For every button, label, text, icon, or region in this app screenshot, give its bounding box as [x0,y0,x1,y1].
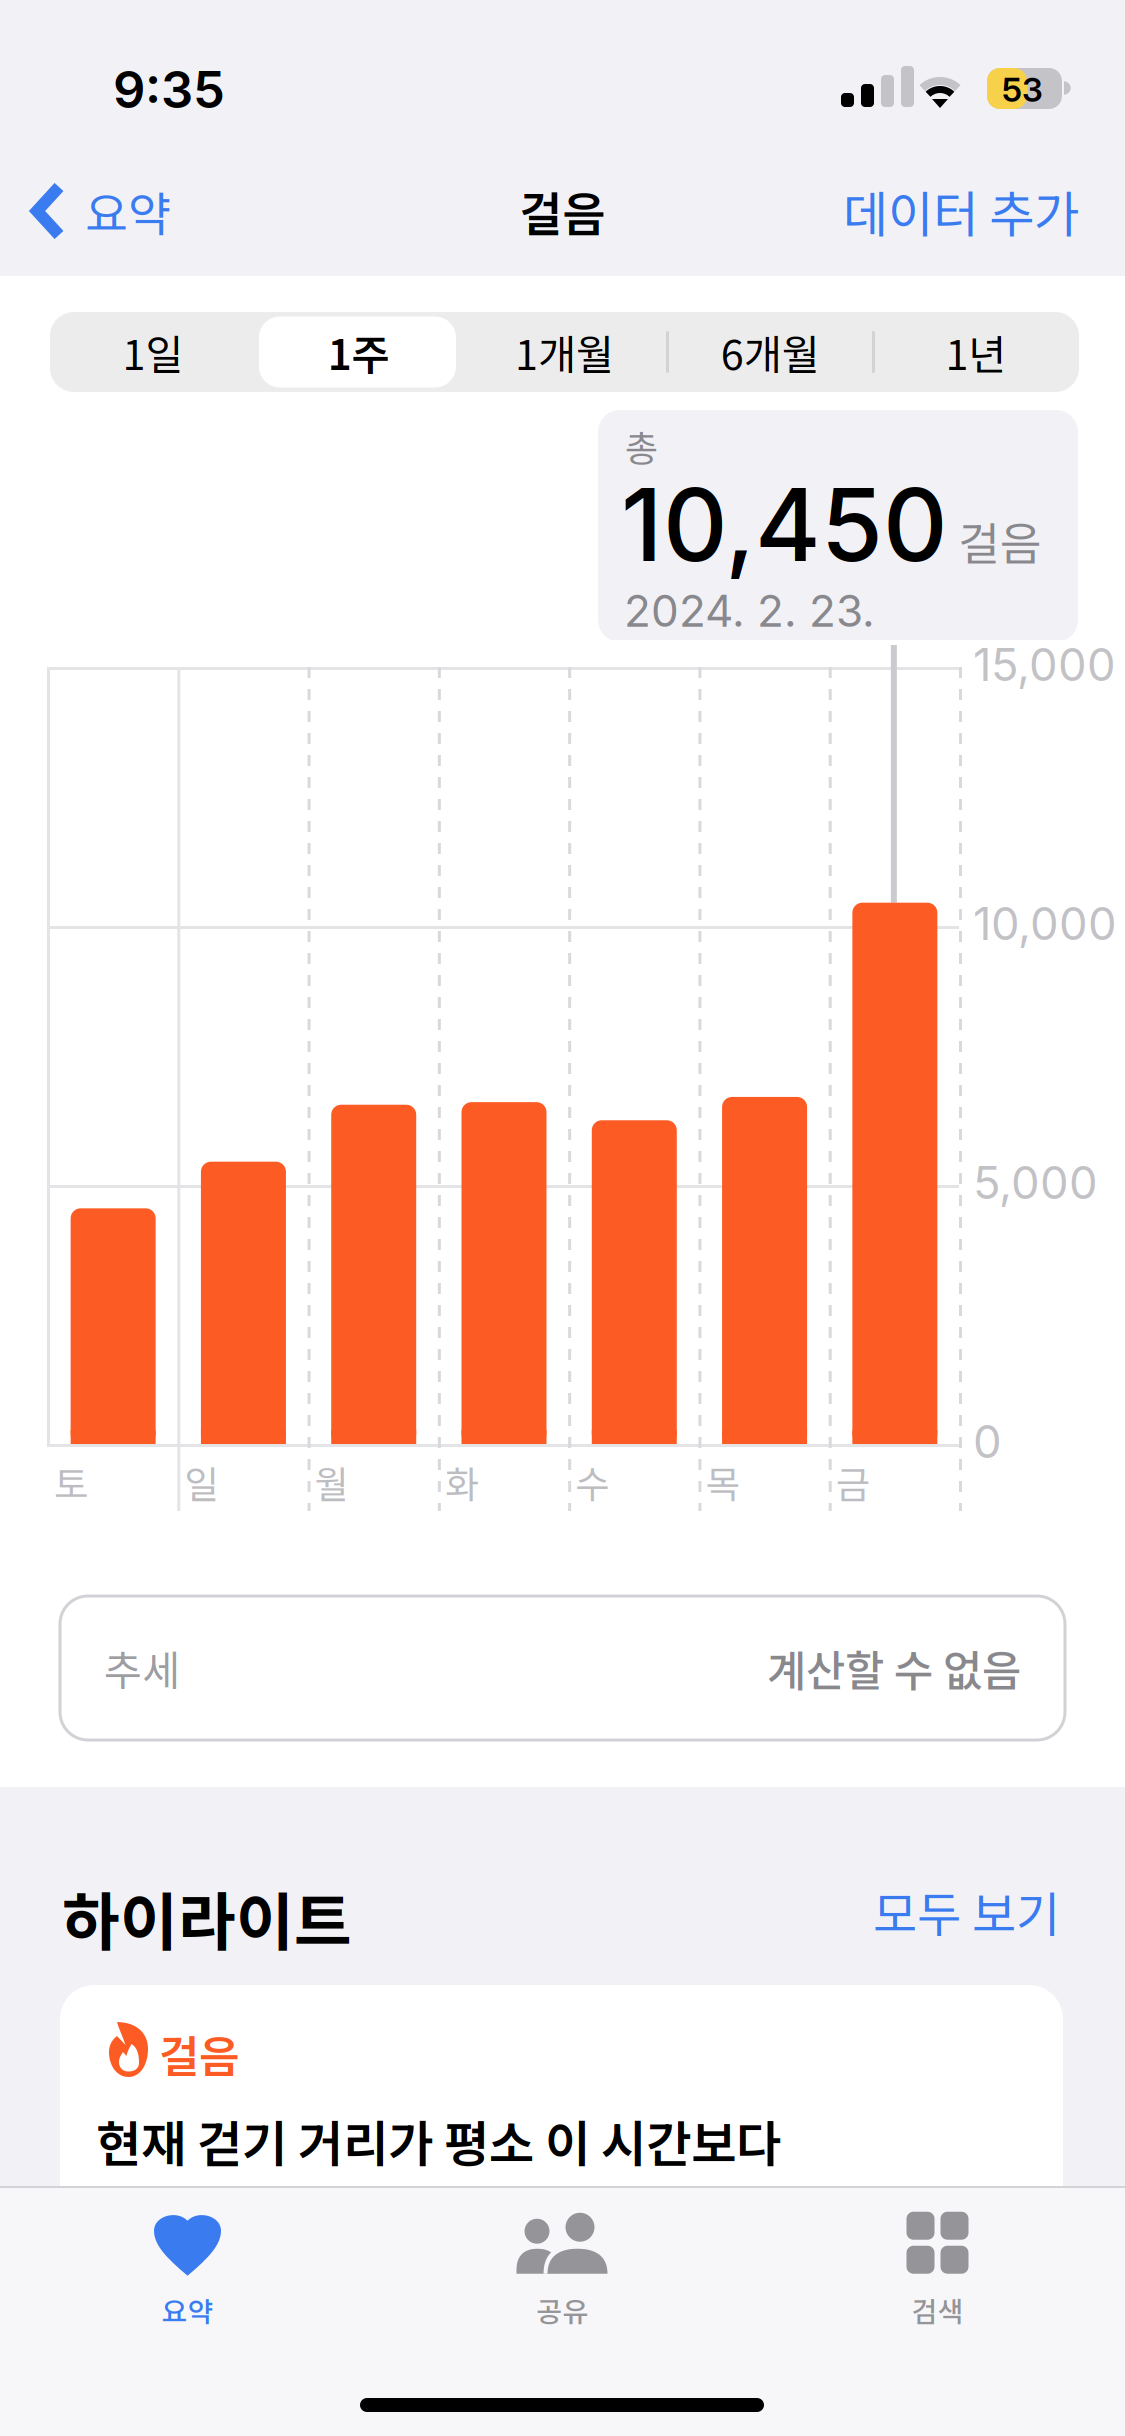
staticText: 하이라이트 [62,1872,352,1963]
staticText: 화 [445,1455,479,1509]
staticText: 데이터 추가 [843,175,1079,247]
staticText: 6개월 [721,322,820,382]
staticText: 계산할 수 없음 [767,1637,1021,1699]
staticText: 걸음 [159,2022,239,2086]
staticText: 걸음 [519,177,605,245]
staticText: 1년 [946,322,1007,382]
staticText: 10,450 [621,464,948,585]
staticText: 금 [836,1455,870,1509]
button[interactable]: 데이터 추가 [0,146,1125,276]
button[interactable]: 1일 [50,312,256,392]
staticText: 검색 [911,2290,963,2330]
button[interactable]: 요약 [0,146,195,276]
button[interactable]: 1개월 [462,312,667,392]
button[interactable]: 1주 [256,312,462,392]
staticText: 목 [705,1455,739,1509]
staticText: 요약 [85,177,171,245]
staticText: 수 [575,1455,609,1509]
staticText: 10,000 [973,896,1117,951]
staticText: 1일 [122,322,183,382]
staticText: 0 [973,1414,1002,1469]
button[interactable]: 1년 [873,312,1079,392]
staticText: 총 [625,420,658,472]
staticText: 1주 [328,322,390,382]
staticText: 9:35 [113,59,225,120]
staticText: 걸음 [958,508,1042,574]
button[interactable]: 추세 [60,1596,1065,1740]
staticText: 공유 [536,2290,588,2330]
button[interactable]: 모두 보기 [780,1871,1060,1951]
button[interactable]: 검색 [750,2196,1125,2346]
staticText: 5,000 [973,1155,1098,1210]
staticText: 일 [184,1455,218,1509]
button[interactable]: 요약 [0,2196,375,2346]
staticText: 2024. 2. 23. [624,584,875,637]
staticText: 월 [315,1455,349,1509]
staticText: 요약 [161,2290,213,2330]
button[interactable]: 공유 [375,2196,750,2346]
staticText: 15,000 [973,637,1116,692]
button[interactable]: 6개월 [667,312,873,392]
staticText: 1개월 [515,322,614,382]
staticText: 53 [1002,69,1043,110]
staticText: 추세 [104,1638,180,1698]
staticText: 모두 보기 [873,1876,1060,1946]
staticText: 토 [54,1455,88,1509]
staticText: 현재 걷기 거리가 평소 이 시간보다 [96,2105,781,2176]
